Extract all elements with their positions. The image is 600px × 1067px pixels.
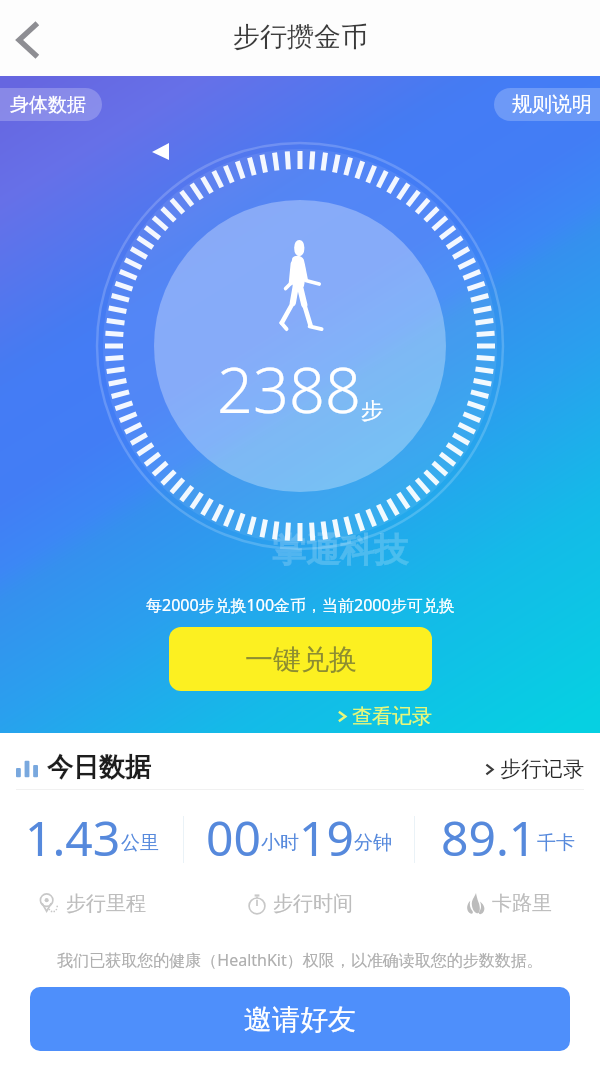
staticText: 邀请好友: [244, 1002, 356, 1037]
staticText: 19: [299, 805, 354, 859]
button[interactable]: Back: [0, 7, 62, 69]
staticText: 步行攒金币: [233, 20, 368, 54]
button[interactable]: 一键兑换: [169, 627, 432, 691]
staticText: 小时: [261, 831, 299, 855]
staticText: 我们已获取您的健康（HealthKit）权限，以准确读取您的步数数据。: [0, 949, 600, 971]
staticText: 00: [206, 805, 261, 859]
button[interactable]: 卡路里: [464, 891, 552, 916]
staticText: 1.43: [25, 805, 121, 859]
staticText: 今日数据: [47, 751, 151, 784]
button[interactable]: 规则说明: [494, 88, 600, 121]
staticText: 步行时间: [273, 891, 353, 916]
staticText: 千卡: [537, 831, 575, 855]
staticText: 查看记录: [352, 704, 432, 729]
button[interactable]: 步行记录: [481, 754, 586, 784]
staticText: 2388: [217, 346, 361, 432]
button[interactable]: 身体数据: [0, 88, 102, 121]
button[interactable]: 步行里程: [38, 891, 146, 916]
staticText: 规则说明: [512, 92, 592, 117]
button[interactable]: 邀请好友: [30, 987, 570, 1051]
staticText: 步行里程: [66, 891, 146, 916]
staticText: 掌通科技: [272, 529, 408, 572]
button[interactable]: 查看记录: [334, 702, 434, 731]
staticText: 89.1: [441, 805, 537, 859]
button[interactable]: 今日数据: [16, 751, 151, 784]
staticText: 步: [361, 397, 383, 425]
staticText: 卡路里: [492, 891, 552, 916]
button[interactable]: 步行时间: [245, 891, 353, 916]
staticText: 一键兑换: [245, 642, 357, 677]
staticText: 公里: [121, 831, 159, 855]
staticText: 每2000步兑换100金币，当前2000步可兑换: [146, 594, 455, 616]
staticText: 步行记录: [500, 756, 584, 782]
staticText: 身体数据: [10, 93, 86, 117]
staticText: 分钟: [354, 831, 392, 855]
